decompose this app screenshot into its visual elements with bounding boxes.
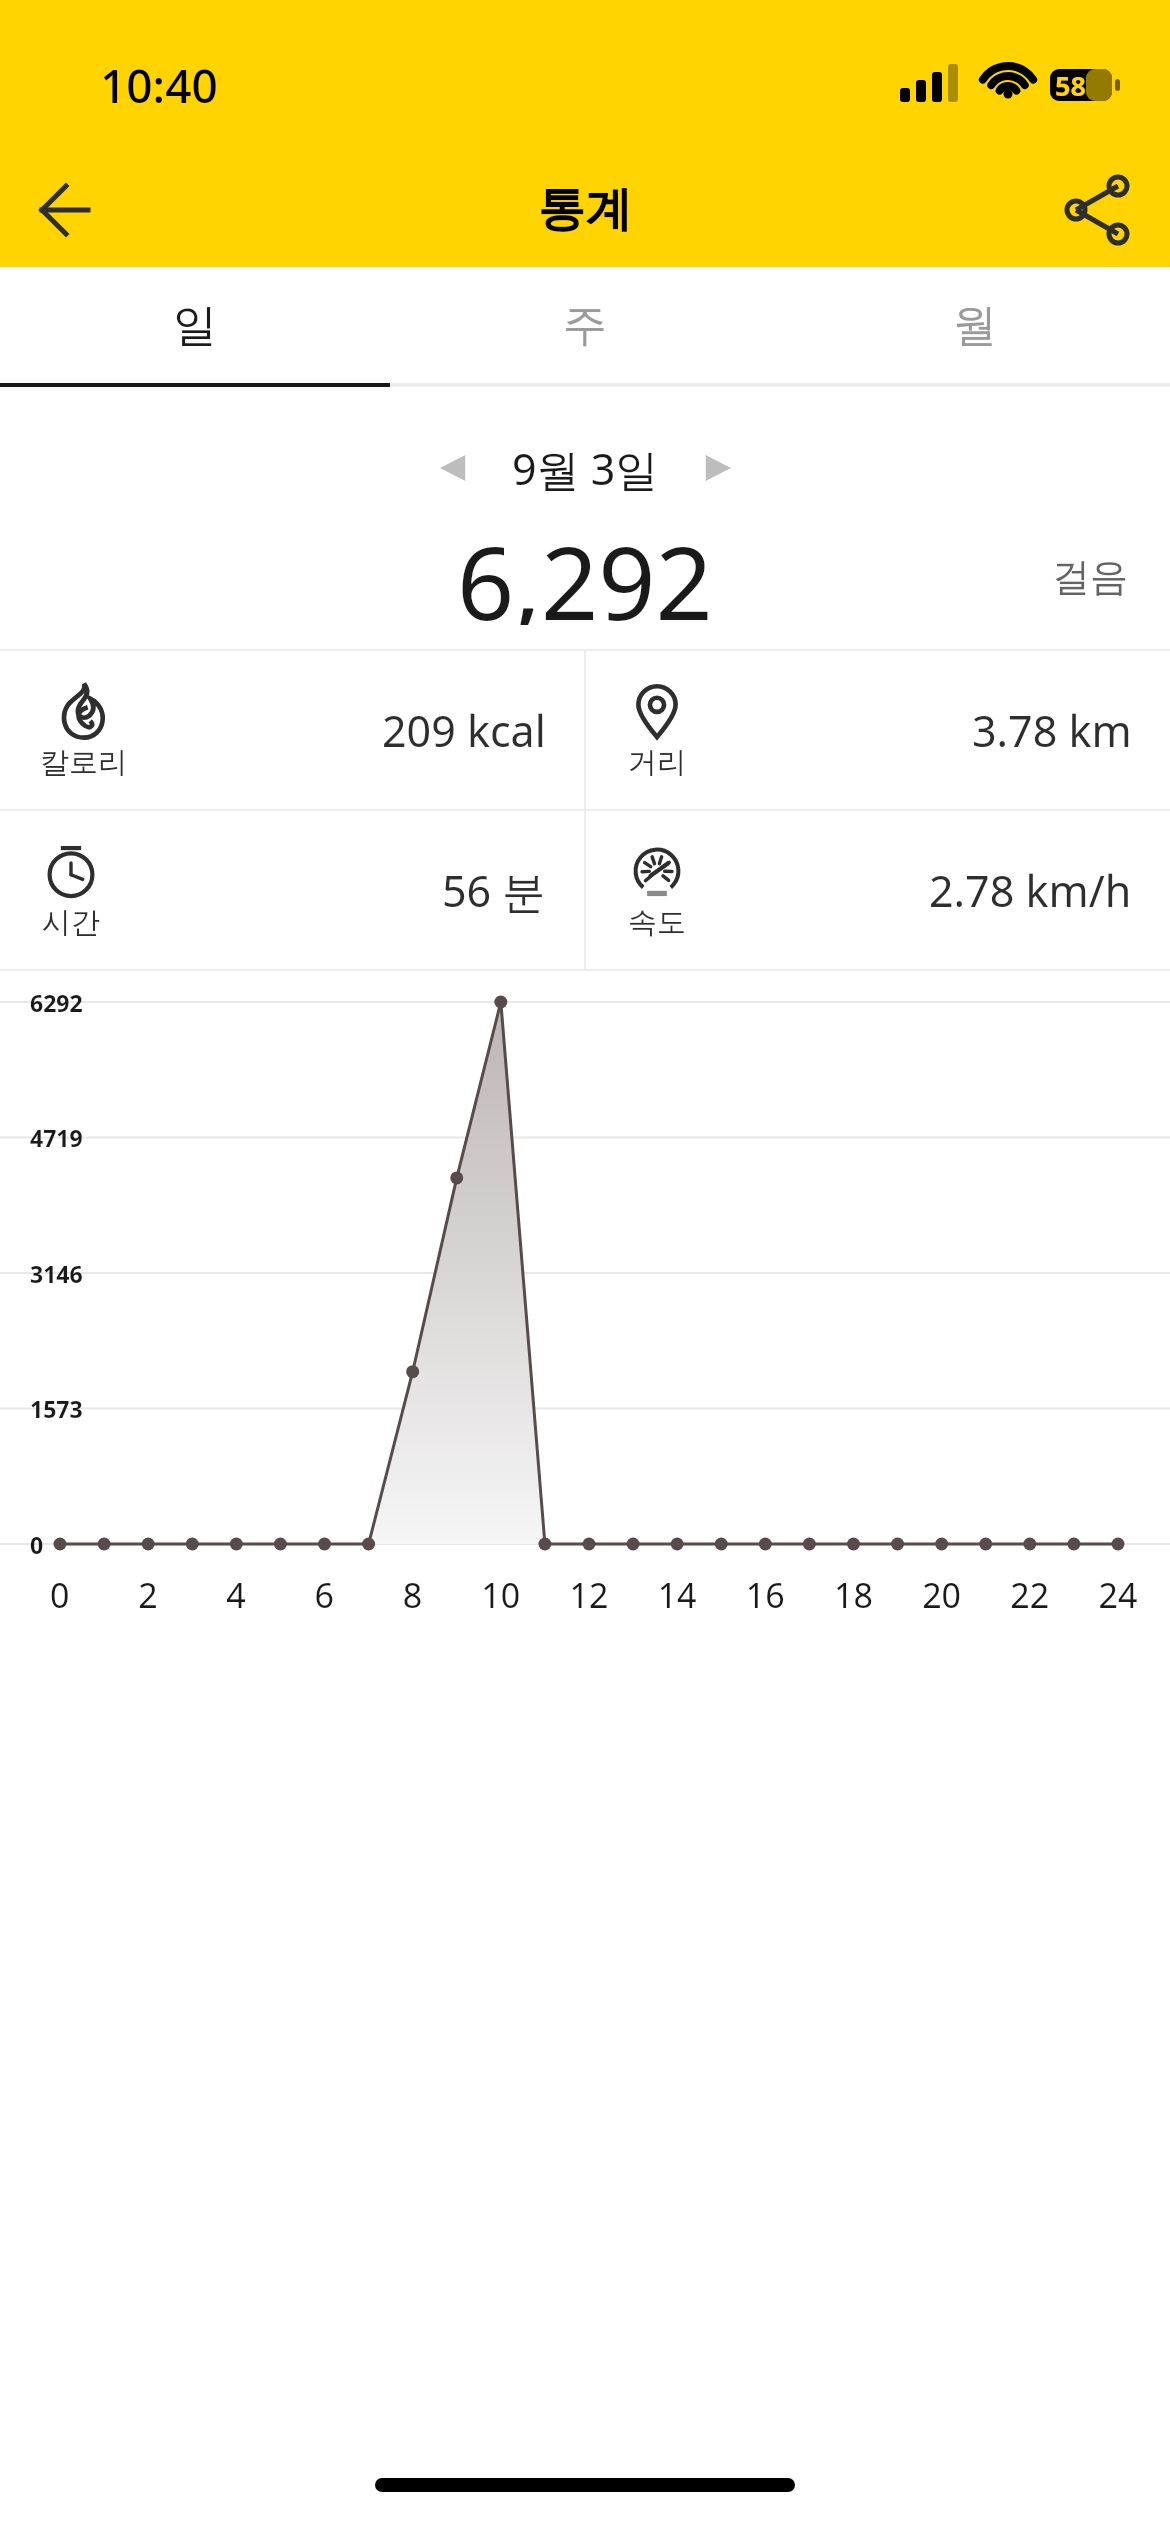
staticText: 거리 (628, 744, 686, 781)
staticText: 9월 3일 (512, 439, 659, 498)
staticText: 58 (1055, 67, 1086, 104)
staticText: 3.78 km (972, 701, 1132, 760)
button[interactable]: Share (1050, 164, 1142, 256)
button[interactable]: 속도 (586, 811, 1170, 969)
staticText: 걸음 (1052, 553, 1128, 601)
button[interactable]: 시간 (0, 811, 584, 969)
staticText: 6,292 (457, 513, 713, 625)
staticText: 속도 (628, 904, 686, 941)
button[interactable]: Previous day (416, 431, 490, 505)
staticText: 통계 (538, 180, 632, 239)
staticText: 10:40 (100, 54, 218, 117)
button[interactable]: 거리 (586, 651, 1170, 809)
staticText: 칼로리 (40, 744, 127, 781)
staticText: 일 (173, 298, 217, 353)
button[interactable]: 일 (0, 267, 390, 383)
button[interactable]: 칼로리 (0, 651, 584, 809)
staticText: 56 분 (442, 861, 546, 920)
staticText: 월 (953, 298, 997, 353)
button[interactable]: Next day (681, 431, 755, 505)
staticText: 시간 (42, 904, 100, 941)
button[interactable]: Back (20, 164, 112, 256)
button[interactable]: 월 (780, 267, 1170, 383)
staticText: 2.78 km/h (929, 861, 1132, 920)
staticText: 주 (563, 298, 607, 353)
staticText: 209 kcal (382, 701, 546, 760)
button[interactable]: 주 (390, 267, 780, 383)
